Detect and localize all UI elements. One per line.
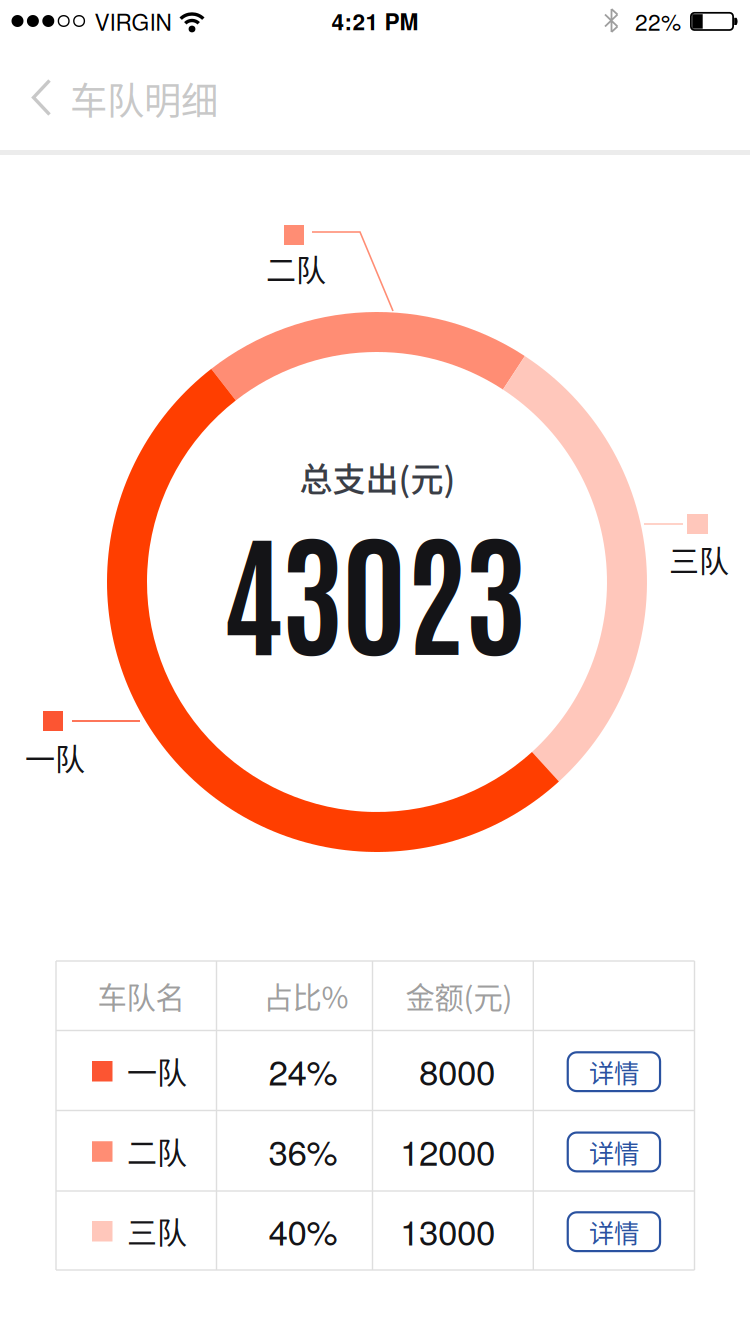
button[interactable]: 详情 [567,1051,661,1092]
staticText: 8000 [419,1045,495,1095]
staticText: 43023 [222,501,527,674]
staticText: 总支出(元) [299,453,455,501]
staticText: 三队 [669,537,729,581]
staticText: 详情 [589,1134,639,1170]
staticText: 22% [635,5,681,37]
staticText: 车队明细 [70,71,218,126]
button[interactable]: 返回 车队明细 [0,0,220,150]
staticText: 40% [268,1205,337,1255]
staticText: 详情 [589,1213,639,1250]
staticText: 金额(元) [405,974,512,1017]
staticText: 二队 [266,246,326,290]
staticText: 三队 [127,1209,187,1252]
staticText: VIRGIN [94,5,171,37]
button[interactable]: 详情 [567,1131,661,1172]
button[interactable]: 详情 [567,1211,661,1252]
staticText: 12000 [400,1126,495,1176]
staticText: 详情 [589,1053,639,1090]
staticText: 一队 [25,735,85,779]
staticText: 13000 [400,1205,495,1255]
staticText: 二队 [127,1129,187,1172]
staticText: 一队 [127,1049,187,1092]
staticText: 36% [268,1126,337,1176]
staticText: 4:21 PM [331,5,418,37]
staticText: 24% [268,1045,337,1095]
staticText: 占比% [263,974,348,1017]
staticText: 车队名 [97,974,184,1017]
